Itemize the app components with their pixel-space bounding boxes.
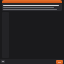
button[interactable] bbox=[2, 0, 62, 11]
button[interactable]: Primary action bbox=[56, 60, 63, 64]
button[interactable]: Menu bbox=[1, 60, 5, 63]
